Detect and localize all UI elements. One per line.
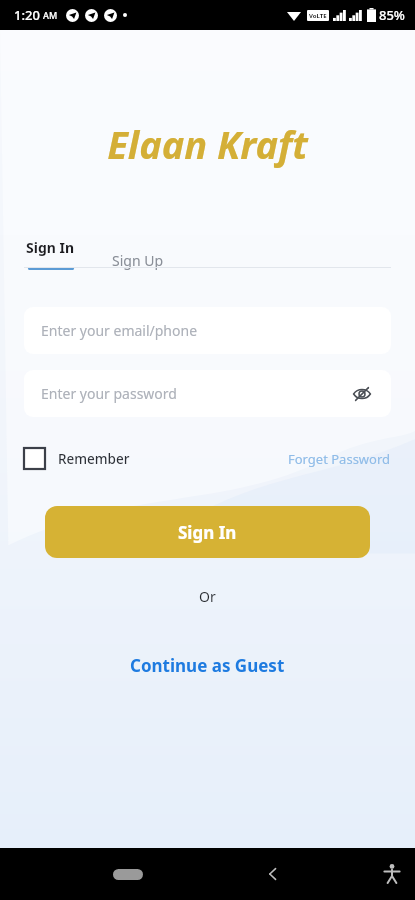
staticText: Enter your email/phone: [41, 321, 198, 340]
staticText: Remember: [58, 450, 130, 468]
staticText: Sign Up: [112, 251, 164, 270]
button[interactable]: Sign In: [45, 506, 370, 558]
staticText: 85%: [379, 6, 405, 24]
staticText: Sign In: [26, 238, 75, 257]
staticText: 1:20: [14, 6, 40, 24]
button[interactable]: Remember: [24, 444, 130, 473]
button[interactable]: Continue as Guest: [112, 648, 303, 683]
button[interactable]: Forget Password: [288, 446, 391, 472]
staticText: Elaan Kraft: [107, 118, 308, 170]
staticText: Forget Password: [288, 450, 391, 468]
button[interactable]: Home: [113, 869, 143, 880]
staticText: VoLTE: [309, 12, 327, 20]
button[interactable]: Back: [256, 857, 290, 891]
staticText: Continue as Guest: [130, 654, 285, 677]
button[interactable]: Accessibility: [375, 857, 409, 891]
button[interactable]: Enter your password: [24, 370, 391, 417]
staticText: AM: [43, 9, 58, 21]
staticText: Sign In: [178, 521, 237, 544]
button[interactable]: Sign Up: [110, 251, 166, 270]
button[interactable]: Sign In: [24, 238, 77, 270]
staticText: Enter your password: [41, 384, 177, 403]
button[interactable]: Show password: [349, 381, 375, 407]
button[interactable]: Enter your email/phone: [24, 307, 391, 354]
staticText: Or: [199, 587, 216, 606]
